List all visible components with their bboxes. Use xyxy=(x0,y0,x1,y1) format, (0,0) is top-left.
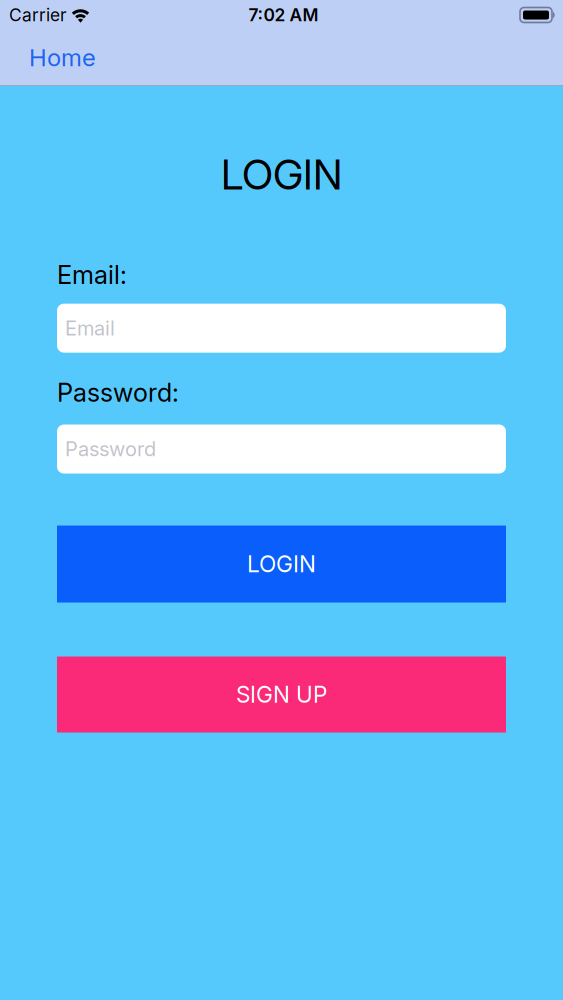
staticText: Email xyxy=(65,316,115,340)
staticText: 7:02 AM xyxy=(248,5,318,25)
staticText: LOGIN xyxy=(221,150,342,199)
staticText: Carrier xyxy=(9,5,67,25)
button[interactable]: SIGN UP xyxy=(57,656,506,732)
button[interactable]: LOGIN xyxy=(57,525,506,602)
staticText: Home xyxy=(29,43,96,72)
button[interactable]: Home xyxy=(29,43,96,72)
staticText: Password xyxy=(65,437,156,461)
staticText: SIGN UP xyxy=(236,681,327,708)
staticText: LOGIN xyxy=(247,551,316,577)
staticText: Password: xyxy=(57,378,179,407)
staticText: Email: xyxy=(57,260,127,290)
